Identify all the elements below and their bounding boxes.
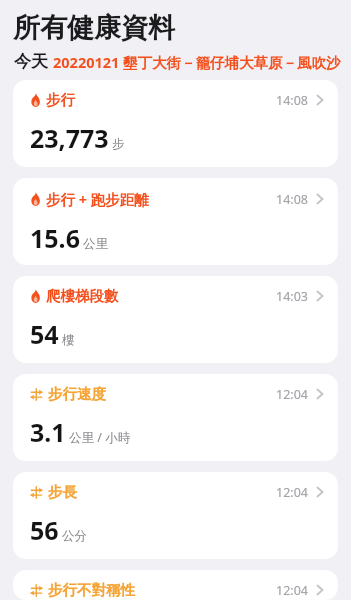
staticText: 步長 xyxy=(48,483,77,501)
staticText: 樓 xyxy=(62,332,75,348)
staticText: 12:04 xyxy=(276,582,308,599)
staticText: 54 xyxy=(30,317,59,351)
button[interactable]: Activity xyxy=(13,276,338,363)
staticText: 步 xyxy=(112,136,125,152)
button[interactable]: Activity xyxy=(13,80,338,167)
other: Open details xyxy=(316,485,324,499)
button[interactable]: Walking metric xyxy=(13,472,338,559)
button[interactable]: Walking metric xyxy=(13,374,338,461)
button[interactable]: Activity xyxy=(13,178,338,265)
other: Open details xyxy=(316,387,324,401)
other: Open details xyxy=(316,192,324,206)
staticText: 14:08 xyxy=(276,191,308,208)
other: Open details xyxy=(316,289,324,303)
staticText: 12:04 xyxy=(276,386,308,403)
other: Open details xyxy=(316,93,324,107)
staticText: 23,773 xyxy=(30,121,109,155)
staticText: 步行不對稱性 xyxy=(48,581,135,599)
staticText: 步行 xyxy=(46,91,75,109)
other: Activity xyxy=(30,192,41,206)
staticText: 公分 xyxy=(62,528,87,544)
staticText: 3.1 xyxy=(30,415,66,449)
staticText: 20220121 墾丁大街－籠仔埔大草原－風吹沙 xyxy=(53,52,341,72)
button[interactable]: Walking metric xyxy=(13,570,338,600)
other: Walking metric xyxy=(30,486,43,499)
staticText: 今天 xyxy=(14,51,48,72)
staticText: 14:08 xyxy=(276,92,308,109)
other: Activity xyxy=(30,93,41,107)
staticText: 15.6 xyxy=(30,221,80,255)
staticText: 56 xyxy=(30,513,59,547)
staticText: 公里 xyxy=(83,236,108,252)
staticText: 步行 + 跑步距離 xyxy=(46,189,149,209)
other: Open details xyxy=(316,583,324,597)
staticText: 公里 / 小時 xyxy=(69,429,131,446)
staticText: 14:03 xyxy=(276,288,308,305)
other: Walking metric xyxy=(30,388,43,401)
staticText: 爬樓梯段數 xyxy=(46,287,119,305)
other: Activity xyxy=(30,289,41,303)
staticText: 12:04 xyxy=(276,484,308,501)
other: Walking metric xyxy=(30,584,43,597)
staticText: 所有健康資料 xyxy=(13,11,175,45)
staticText: 步行速度 xyxy=(48,385,106,403)
